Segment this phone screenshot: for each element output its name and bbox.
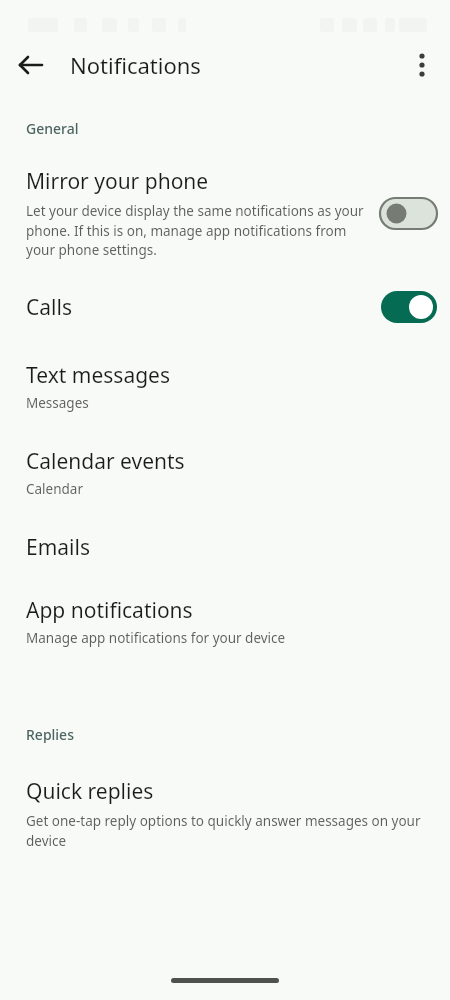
staticText: Let your device display the same notific… — [26, 202, 370, 259]
staticText: Calendar — [26, 480, 83, 498]
staticText: App notifications — [26, 596, 193, 625]
button[interactable]: More options — [402, 45, 442, 85]
staticText: Get one-tap reply options to quickly ans… — [26, 812, 424, 850]
staticText: Quick replies — [26, 777, 154, 806]
button[interactable]: Toggle off — [380, 198, 437, 229]
button[interactable]: Calendar events — [0, 447, 450, 498]
staticText: General — [26, 119, 79, 138]
button[interactable]: Mirror your phone — [0, 167, 450, 259]
staticText: Text messages — [26, 361, 170, 390]
button[interactable]: Text messages — [0, 361, 450, 412]
button[interactable]: Toggle on — [381, 291, 437, 323]
staticText: Mirror your phone — [26, 167, 209, 196]
staticText: Calls — [26, 293, 381, 322]
staticText: Messages — [26, 394, 89, 412]
button[interactable]: Calls — [0, 291, 450, 323]
staticText: Emails — [26, 533, 90, 562]
button[interactable]: Quick replies — [0, 777, 450, 850]
button[interactable]: App notifications — [0, 596, 450, 647]
staticText: Replies — [26, 725, 74, 744]
button[interactable]: Back — [11, 45, 51, 85]
staticText: Manage app notifications for your device — [26, 629, 286, 647]
button[interactable]: Emails — [0, 533, 450, 562]
staticText: Notifications — [70, 50, 201, 80]
staticText: Calendar events — [26, 447, 185, 476]
